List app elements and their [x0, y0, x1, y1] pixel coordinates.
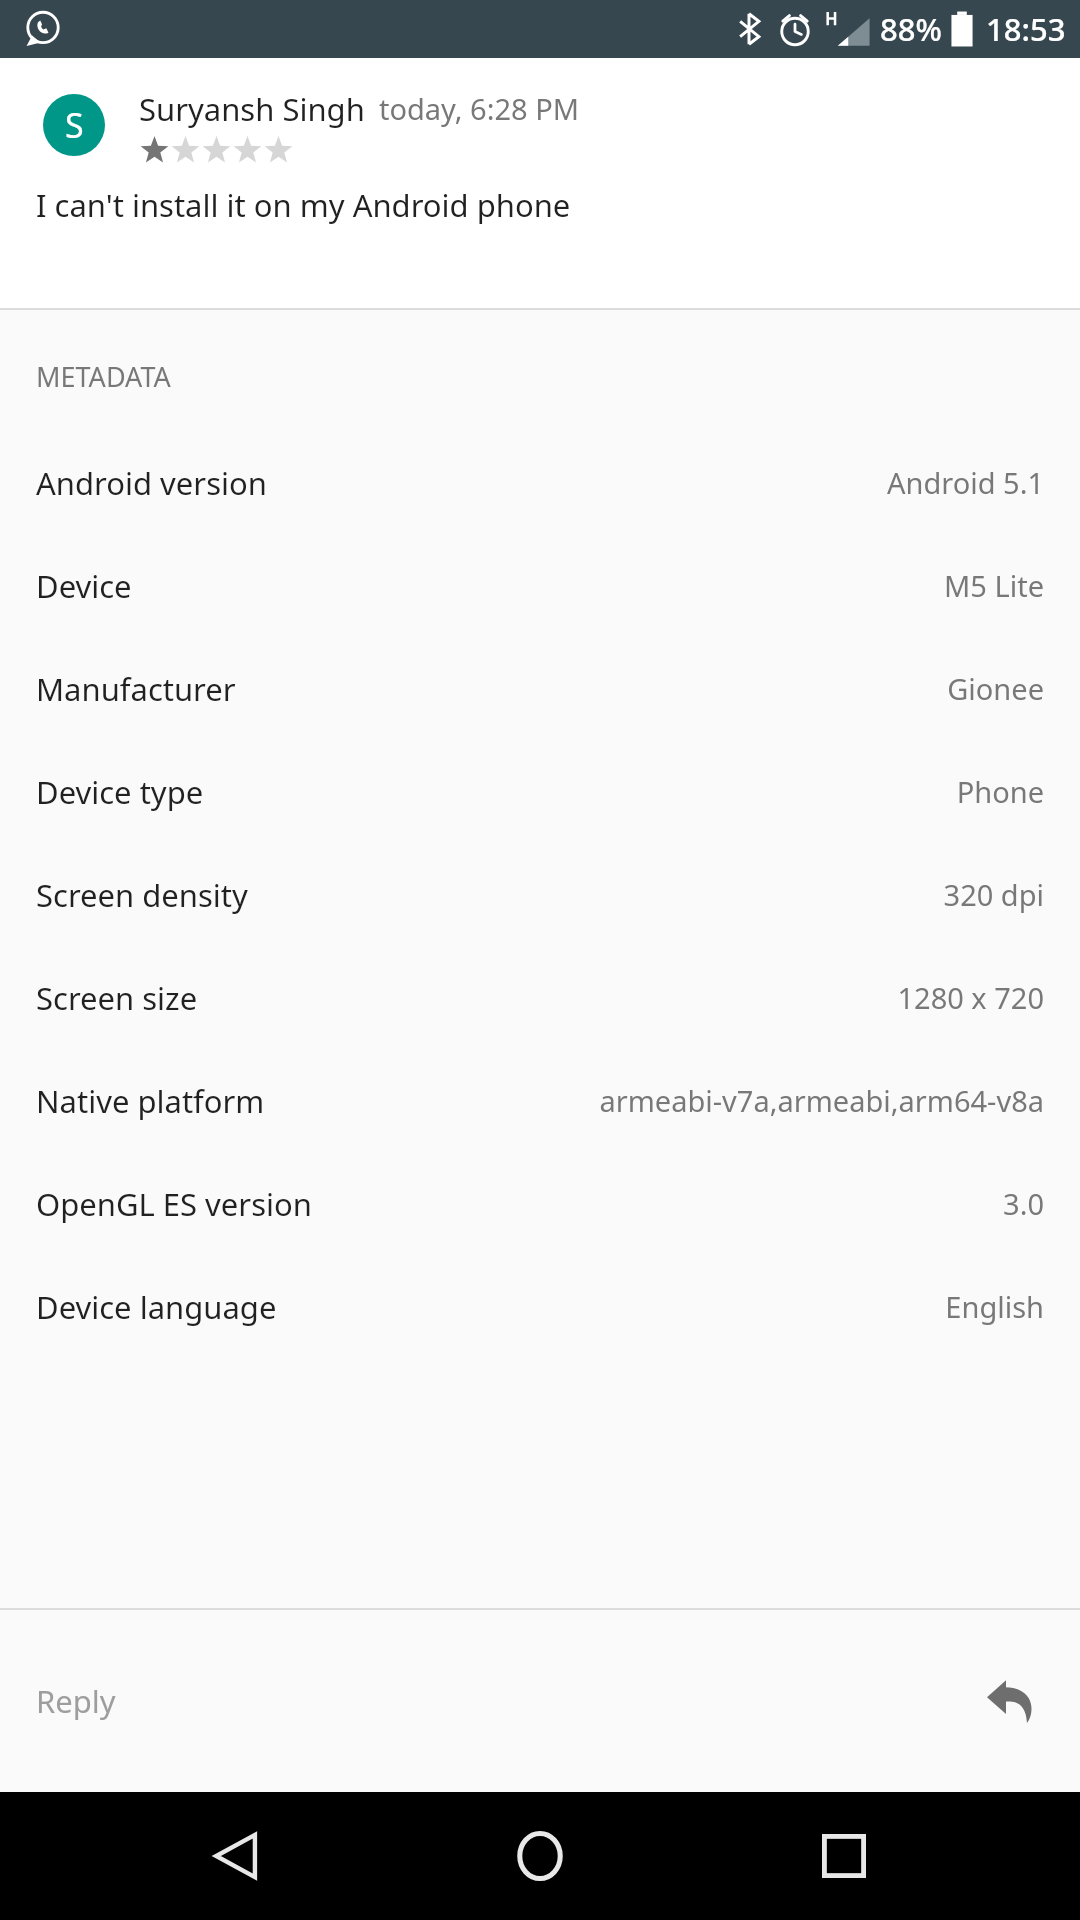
staticText: 3.0 — [1003, 1184, 1044, 1223]
staticText: Device type — [36, 771, 204, 813]
staticText: today, 6:28 PM — [379, 89, 579, 128]
staticText: Screen density — [36, 874, 248, 916]
staticText: 1280 x 720 — [897, 978, 1044, 1017]
button[interactable]: Screen density — [0, 843, 1080, 946]
staticText: S — [65, 102, 84, 148]
staticText: English — [945, 1287, 1044, 1326]
staticText: Android version — [36, 462, 267, 504]
staticText: METADATA — [36, 358, 171, 395]
button[interactable]: Recent apps — [784, 1814, 904, 1898]
staticText: M5 Lite — [944, 566, 1044, 605]
staticText: Reply — [36, 1680, 116, 1722]
staticText: 18:53 — [986, 8, 1066, 50]
staticText: Native platform — [36, 1080, 265, 1122]
staticText: armeabi-v7a,armeabi,arm64-v8a — [599, 1081, 1044, 1120]
staticText: Device language — [36, 1286, 277, 1328]
staticText: OpenGL ES version — [36, 1183, 312, 1225]
button[interactable]: Home — [480, 1814, 600, 1898]
staticText: Phone — [956, 772, 1044, 811]
staticText: Gionee — [947, 669, 1044, 708]
staticText: Suryansh Singh — [139, 88, 365, 130]
button[interactable]: Manufacturer — [0, 637, 1080, 740]
staticText: Device — [36, 565, 132, 607]
staticText: I can't install it on my Android phone — [36, 184, 571, 226]
button[interactable]: Device type — [0, 740, 1080, 843]
staticText: 320 dpi — [943, 875, 1044, 914]
button[interactable]: Device — [0, 534, 1080, 637]
button[interactable]: OpenGL ES version — [0, 1152, 1080, 1255]
button[interactable]: Screen size — [0, 946, 1080, 1049]
staticText: Manufacturer — [36, 668, 236, 710]
staticText: Screen size — [36, 977, 198, 1019]
button[interactable]: Back — [176, 1814, 296, 1898]
button[interactable]: Android version — [0, 431, 1080, 534]
staticText: Android 5.1 — [886, 463, 1044, 502]
staticText: 88% — [880, 8, 942, 50]
button[interactable]: Native platform — [0, 1049, 1080, 1152]
button[interactable]: Reply — [0, 1610, 1080, 1792]
button[interactable]: Reply — [982, 1672, 1040, 1730]
button[interactable]: Device language — [0, 1255, 1080, 1358]
